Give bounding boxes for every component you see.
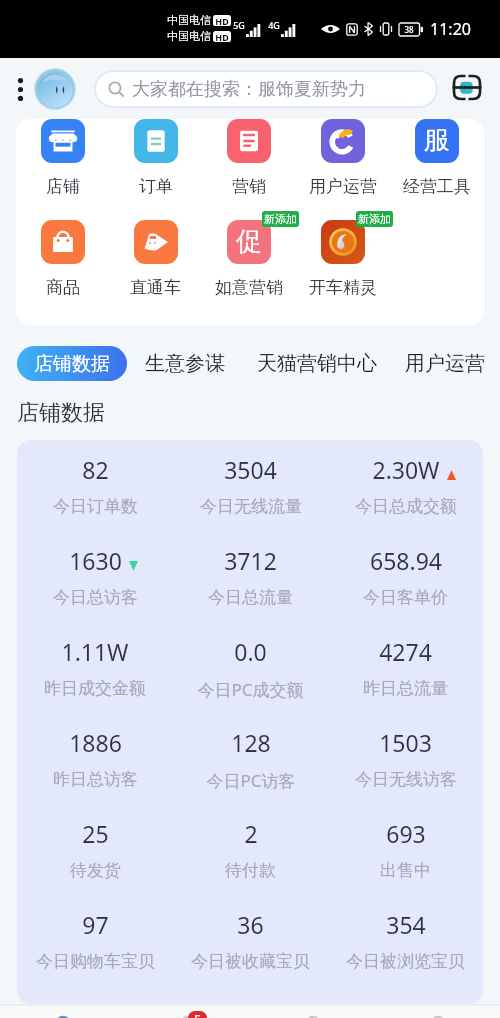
staticText: 3712 xyxy=(224,545,277,576)
button[interactable]: 用户运营 xyxy=(401,346,489,381)
button[interactable]: 4274 xyxy=(328,636,483,699)
staticText: 今日总访客 xyxy=(53,587,138,608)
button[interactable]: 0.0 xyxy=(173,636,328,701)
staticText: 今日无线流量 xyxy=(200,496,302,517)
staticText: 中国电信 xyxy=(167,29,211,43)
staticText: 4G xyxy=(268,19,280,31)
staticText: 新添加 xyxy=(358,212,391,226)
staticText: 开车精灵 xyxy=(309,277,377,298)
staticText: 促 xyxy=(236,225,262,258)
staticText: 1630 xyxy=(69,545,122,576)
button[interactable]: 128 xyxy=(173,727,328,792)
staticText: 今日客单价 xyxy=(363,587,448,608)
button[interactable]: 1886 xyxy=(17,727,173,790)
button[interactable]: 25 xyxy=(17,818,173,881)
staticText: 生意参谋 xyxy=(145,351,225,376)
staticText: 用户运营 xyxy=(405,351,485,376)
staticText: 1886 xyxy=(69,727,122,758)
button[interactable]: 促 xyxy=(202,220,296,298)
staticText: 36 xyxy=(237,909,264,940)
staticText: 今日被浏览宝贝 xyxy=(346,951,465,972)
staticText: 3504 xyxy=(224,454,277,485)
button[interactable]: 我的 xyxy=(375,1006,500,1018)
staticText: 1503 xyxy=(379,727,432,758)
staticText: 昨日总访客 xyxy=(53,769,138,790)
staticText: 今日PC成交额 xyxy=(197,678,304,701)
staticText: 5 xyxy=(194,1011,201,1018)
staticText: 11:20 xyxy=(430,18,471,40)
staticText: 店铺 xyxy=(46,176,80,197)
button[interactable]: 1630 xyxy=(17,545,173,608)
button[interactable]: 店铺 xyxy=(16,119,109,197)
button[interactable]: 新添加 xyxy=(296,220,390,298)
staticText: 2.30W xyxy=(372,454,440,485)
staticText: 354 xyxy=(386,909,426,940)
staticText: 今日购物车宝贝 xyxy=(36,951,155,972)
button[interactable]: Scan QR code xyxy=(449,71,485,107)
button[interactable]: 微淘 xyxy=(125,1006,250,1018)
staticText: 出售中 xyxy=(380,860,431,881)
button[interactable]: 3712 xyxy=(173,545,328,608)
button[interactable]: 服 xyxy=(390,119,484,197)
staticText: 今日无线访客 xyxy=(355,769,457,790)
staticText: 今日总流量 xyxy=(208,587,293,608)
staticText: 新添加 xyxy=(264,212,297,226)
staticText: 用户运营 xyxy=(309,176,377,197)
button[interactable]: 大家都在搜索：服饰夏新势力 xyxy=(96,72,436,106)
button[interactable]: 354 xyxy=(328,909,483,972)
button[interactable]: 店铺数据 xyxy=(17,346,127,381)
staticText: 128 xyxy=(231,727,271,758)
staticText: 如意营销 xyxy=(215,277,283,298)
staticText: 1.11W xyxy=(61,636,129,667)
button[interactable]: 36 xyxy=(173,909,328,972)
button[interactable]: 2 xyxy=(173,818,328,881)
staticText: 大家都在搜索：服饰夏新势力 xyxy=(132,78,366,101)
button[interactable]: 1.11W xyxy=(17,636,173,699)
button[interactable]: 消息 xyxy=(250,1006,375,1018)
staticText: 订单 xyxy=(139,176,173,197)
staticText: 待发货 xyxy=(70,860,121,881)
staticText: 服 xyxy=(424,124,450,157)
staticText: HD xyxy=(215,31,229,42)
staticText: 今日PC访客 xyxy=(206,769,296,792)
staticText: 昨日总流量 xyxy=(363,678,448,699)
button[interactable]: 693 xyxy=(328,818,483,881)
button[interactable]: More options xyxy=(9,71,31,107)
staticText: 店铺数据 xyxy=(17,399,105,427)
staticText: 5G xyxy=(233,19,245,31)
staticText: 0.0 xyxy=(234,636,267,667)
button[interactable]: 首页 xyxy=(0,1006,125,1018)
button[interactable]: 营销 xyxy=(202,119,296,197)
staticText: 待付款 xyxy=(225,860,276,881)
staticText: 今日订单数 xyxy=(53,496,138,517)
staticText: 4274 xyxy=(379,636,432,667)
button[interactable]: 订单 xyxy=(109,119,202,197)
button[interactable]: 658.94 xyxy=(328,545,483,608)
button[interactable]: 商品 xyxy=(16,220,109,298)
button[interactable]: 82 xyxy=(17,454,173,517)
staticText: 商品 xyxy=(46,277,80,298)
button[interactable]: 直通车 xyxy=(109,220,202,298)
staticText: 2 xyxy=(244,818,258,849)
button[interactable]: 生意参谋 xyxy=(141,346,229,381)
button[interactable]: 2.30W xyxy=(328,454,483,517)
staticText: 658.94 xyxy=(370,545,442,576)
staticText: 店铺数据 xyxy=(34,352,110,376)
staticText: 97 xyxy=(82,909,109,940)
staticText: 营销 xyxy=(232,176,266,197)
staticText: 38 xyxy=(404,24,414,35)
button[interactable]: Assistant avatar xyxy=(32,66,78,112)
staticText: 今日被收藏宝贝 xyxy=(191,951,310,972)
staticText: 693 xyxy=(386,818,426,849)
button[interactable]: 天猫营销中心 xyxy=(253,346,381,381)
button[interactable]: 3504 xyxy=(173,454,328,517)
staticText: 中国电信 xyxy=(167,13,211,27)
staticText: HD xyxy=(215,15,229,26)
staticText: 25 xyxy=(82,818,109,849)
staticText: 82 xyxy=(82,454,109,485)
button[interactable]: 1503 xyxy=(328,727,483,790)
button[interactable]: 用户运营 xyxy=(296,119,390,197)
button[interactable]: 97 xyxy=(17,909,173,972)
staticText: 今日总成交额 xyxy=(355,496,457,517)
staticText: 经营工具 xyxy=(403,176,471,197)
